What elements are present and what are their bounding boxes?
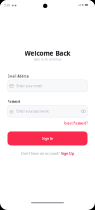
staticText: Password [7, 100, 20, 103]
button[interactable]: Forgot Password? [63, 121, 87, 125]
staticText: Email Address [7, 74, 28, 78]
staticText: Forgot Password? [63, 121, 87, 125]
staticText: Sign Up [61, 151, 74, 156]
button[interactable]: Don't have an account? [21, 151, 74, 156]
staticText: 9:41 [4, 4, 11, 7]
staticText: Enter your email [16, 83, 42, 88]
button[interactable]: Sign In [7, 131, 87, 145]
staticText: Sign In [42, 136, 53, 141]
staticText: Don't have an account? [21, 151, 60, 156]
staticText: Enter your password [16, 109, 49, 113]
staticText: Sign in to continue [34, 58, 61, 61]
staticText: Welcome Back [24, 49, 70, 58]
